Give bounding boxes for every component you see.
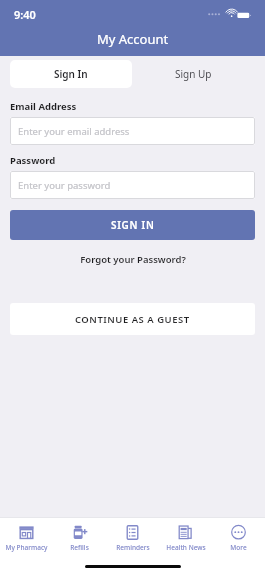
button[interactable]: Health News: [159, 518, 212, 558]
button[interactable]: My Pharmacy: [0, 518, 53, 558]
staticText: Enter your email address: [18, 125, 130, 138]
staticText: Refills: [70, 543, 89, 552]
staticText: Reminders: [116, 543, 150, 552]
staticText: 9:40: [14, 7, 36, 22]
button[interactable]: Refills: [53, 518, 106, 558]
button[interactable]: More: [212, 518, 265, 558]
button[interactable]: Enter your password: [10, 171, 255, 199]
staticText: More: [230, 543, 247, 552]
button[interactable]: Forgot your Password?: [10, 253, 255, 266]
staticText: SIGN IN: [111, 218, 155, 232]
staticText: Enter your password: [18, 179, 111, 192]
staticText: Sign In: [54, 67, 88, 81]
button[interactable]: CONTINUE AS A GUEST: [10, 303, 255, 335]
staticText: Sign Up: [175, 67, 212, 81]
button[interactable]: Enter your email address: [10, 117, 255, 145]
staticText: Health News: [166, 543, 206, 552]
staticText: Password: [10, 154, 56, 167]
button[interactable]: Sign Up: [132, 60, 255, 88]
button[interactable]: SIGN IN: [10, 210, 255, 240]
staticText: CONTINUE AS A GUEST: [75, 313, 190, 326]
staticText: Forgot your Password?: [80, 253, 186, 266]
button[interactable]: Sign In: [10, 60, 132, 88]
staticText: Email Address: [10, 100, 77, 113]
staticText: My Pharmacy: [5, 543, 48, 552]
button[interactable]: Reminders: [106, 518, 159, 558]
staticText: My Account: [97, 30, 169, 48]
